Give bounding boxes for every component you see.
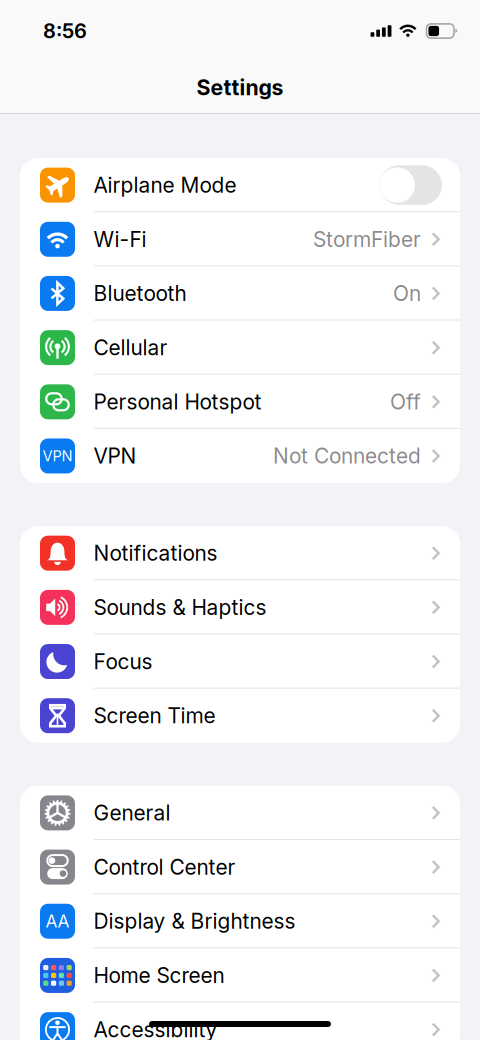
- button[interactable]: AA: [20, 894, 460, 948]
- staticText: AA: [45, 911, 69, 932]
- staticText: VPN: [93, 443, 136, 469]
- button[interactable]: VPN: [20, 429, 460, 483]
- staticText: Accessibility: [93, 1017, 217, 1040]
- staticText: 8:56: [43, 19, 87, 43]
- staticText: Home Screen: [93, 963, 224, 988]
- button[interactable]: General: [20, 786, 460, 840]
- staticText: Not Connected: [273, 443, 421, 469]
- staticText: Focus: [93, 649, 152, 674]
- staticText: Sounds & Haptics: [93, 595, 266, 620]
- staticText: Airplane Mode: [93, 172, 236, 198]
- button[interactable]: Notifications: [20, 526, 460, 580]
- staticText: Cellular: [93, 335, 167, 360]
- staticText: Settings: [196, 75, 283, 100]
- staticText: Display & Brightness: [93, 909, 295, 934]
- button[interactable]: Cellular: [20, 320, 460, 375]
- staticText: Personal Hotspot: [93, 389, 261, 414]
- button[interactable]: Airplane Mode: [20, 158, 460, 212]
- staticText: Notifications: [93, 540, 217, 566]
- staticText: Off: [390, 389, 421, 414]
- staticText: VPN: [42, 447, 72, 465]
- staticText: On: [393, 281, 421, 306]
- button[interactable]: Home Screen: [20, 948, 460, 1002]
- staticText: General: [93, 800, 170, 825]
- button[interactable]: Screen Time: [20, 689, 460, 743]
- staticText: Wi-Fi: [93, 227, 146, 252]
- staticText: Control Center: [93, 854, 235, 880]
- staticText: Screen Time: [93, 703, 215, 728]
- button[interactable]: Focus: [20, 634, 460, 689]
- staticText: Bluetooth: [93, 281, 186, 306]
- button[interactable]: Bluetooth: [20, 266, 460, 321]
- button[interactable]: Wi-Fi: [20, 212, 460, 266]
- button[interactable]: Sounds & Haptics: [20, 580, 460, 634]
- button[interactable]: Personal Hotspot: [20, 375, 460, 429]
- button[interactable]: Accessibility: [20, 1002, 460, 1040]
- staticText: StormFiber: [313, 227, 421, 252]
- button[interactable]: Control Center: [20, 840, 460, 894]
